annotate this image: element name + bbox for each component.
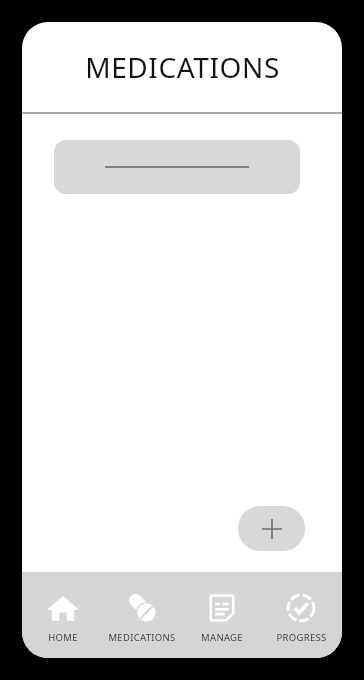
button[interactable]: MANAGE bbox=[184, 591, 260, 644]
button[interactable]: Add medication bbox=[238, 506, 305, 551]
button[interactable]: HOME bbox=[25, 591, 101, 644]
staticText: MEDICATIONS bbox=[85, 48, 280, 86]
button[interactable]: PROGRESS bbox=[263, 591, 339, 644]
staticText: PROGRESS bbox=[276, 631, 327, 644]
staticText: HOME bbox=[48, 631, 78, 644]
button[interactable] bbox=[54, 140, 300, 194]
button[interactable]: MEDICATIONS bbox=[104, 591, 180, 644]
staticText: MEDICATIONS bbox=[108, 631, 176, 644]
staticText: MANAGE bbox=[201, 631, 243, 644]
